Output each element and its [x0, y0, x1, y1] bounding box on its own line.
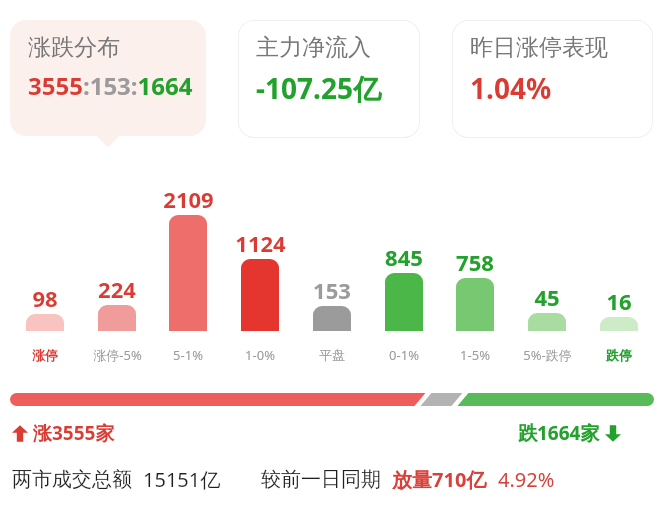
staticText: 758 [456, 247, 494, 277]
button[interactable]: 5-1% [145, 344, 231, 366]
button[interactable]: 5%-跌停 [528, 313, 566, 331]
staticText: 涨跌分布 [28, 33, 120, 62]
button[interactable]: 涨停 [26, 314, 64, 331]
button[interactable]: 5%-跌停 [504, 344, 590, 366]
staticText: 1-5% [460, 346, 490, 364]
staticText: 15151亿 [143, 466, 221, 493]
staticText: 较前一日同期 [261, 467, 381, 492]
staticText: 3555:153:1664 [28, 69, 193, 102]
button[interactable]: 涨停-5% [98, 305, 136, 331]
staticText: 涨3555家 [33, 420, 115, 446]
button[interactable]: 1-5% [432, 344, 518, 366]
button[interactable]: 5-1% [169, 215, 207, 331]
button[interactable]: 1-5% [456, 278, 494, 331]
staticText: 跌1664家 [518, 420, 600, 446]
staticText: 1-0% [245, 346, 275, 364]
staticText: 主力净流入 [256, 33, 371, 62]
button[interactable]: 1-0% [217, 344, 303, 366]
staticText: 两市成交总额 [12, 467, 132, 492]
button[interactable]: 1-0% [241, 259, 279, 331]
staticText: 5-1% [173, 346, 203, 364]
staticText: 153 [313, 275, 351, 305]
staticText: 845 [385, 242, 423, 272]
staticText: 平盘 [319, 347, 345, 363]
button[interactable]: Advancing [12, 419, 115, 447]
staticText: 16 [606, 286, 632, 316]
button[interactable]: 涨停 [2, 344, 88, 366]
staticText: 涨停 [32, 347, 58, 363]
button[interactable]: 跌停 [600, 317, 638, 331]
button[interactable]: 昨日涨停表现 [452, 20, 653, 138]
staticText: 45 [534, 282, 560, 312]
button[interactable]: 涨跌分布 [10, 20, 206, 136]
staticText: 1.04% [470, 69, 552, 107]
staticText: 224 [98, 274, 136, 304]
staticText: 5%-跌停 [523, 346, 572, 364]
other: Advancing [12, 424, 28, 443]
other: Declining [605, 424, 621, 443]
button[interactable]: 跌停 [576, 344, 662, 366]
button[interactable]: 涨停-5% [74, 344, 160, 366]
staticText: 2109 [163, 184, 214, 214]
staticText: 1124 [235, 228, 286, 258]
staticText: 4.92% [498, 466, 555, 493]
button[interactable]: 平盘 [313, 306, 351, 331]
button[interactable]: 0-1% [385, 273, 423, 331]
button[interactable]: 平盘 [289, 344, 375, 366]
staticText: 放量710亿 [392, 466, 487, 493]
staticText: 跌停 [606, 347, 632, 363]
staticText: -107.25亿 [256, 69, 381, 107]
button[interactable]: 0-1% [361, 344, 447, 366]
staticText: 0-1% [389, 346, 419, 364]
button[interactable]: 主力净流入 [238, 20, 420, 138]
staticText: 98 [32, 283, 58, 313]
staticText: 涨停-5% [93, 346, 142, 364]
button[interactable]: 跌1664家 [518, 419, 621, 447]
staticText: 昨日涨停表现 [470, 33, 608, 62]
